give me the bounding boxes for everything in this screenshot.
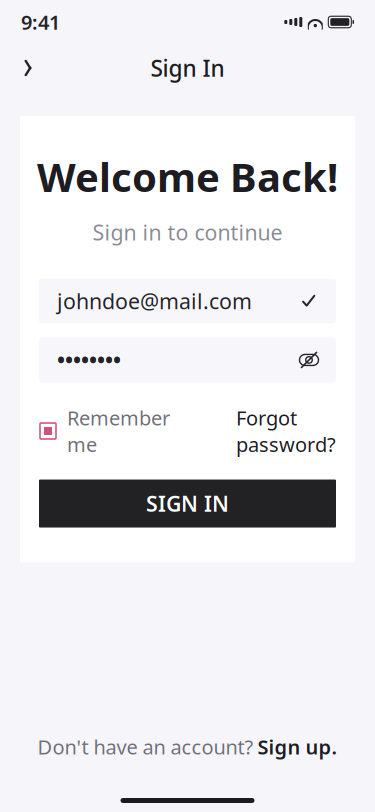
button[interactable]: Forgot password? xyxy=(236,404,336,457)
staticText: Sign up. xyxy=(257,733,337,760)
button[interactable]: Show password xyxy=(294,345,324,375)
staticText: SIGN IN xyxy=(146,489,229,518)
staticText: •••••••• xyxy=(57,346,121,374)
staticText: Sign in to continue xyxy=(92,218,282,246)
staticText: johndoe@mail.com xyxy=(57,287,252,315)
button[interactable]: SIGN IN xyxy=(39,480,336,528)
staticText: 9:41 xyxy=(21,9,60,35)
staticText: Sign In xyxy=(150,53,224,83)
staticText: Don't have an account? xyxy=(37,733,253,760)
button[interactable]: Remember me xyxy=(39,404,170,457)
staticText: Remember me xyxy=(67,404,170,457)
button[interactable]: Don't have an account? xyxy=(37,733,337,760)
staticText: Forgot password? xyxy=(236,404,336,457)
button[interactable]: Back xyxy=(6,46,50,90)
staticText: Welcome Back! xyxy=(37,150,338,203)
